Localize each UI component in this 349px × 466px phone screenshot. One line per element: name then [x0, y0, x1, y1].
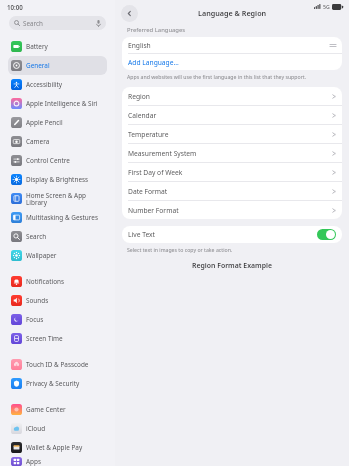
staticText: Number Format: [128, 206, 332, 215]
staticText: Apple Intelligence & Siri: [26, 99, 98, 108]
staticText: Calendar: [128, 111, 332, 120]
button[interactable]: English: [122, 37, 342, 53]
button[interactable]: Sounds: [8, 291, 107, 310]
button[interactable]: Apps: [8, 457, 107, 466]
staticText: Measurement System: [128, 149, 332, 158]
staticText: Region Format Example: [122, 261, 342, 270]
button[interactable]: Multitasking & Gestures: [8, 208, 107, 227]
button[interactable]: Date Format: [122, 182, 342, 200]
button[interactable]: Screen Time: [8, 329, 107, 348]
staticText: Battery: [26, 42, 48, 51]
button[interactable]: Wallet & Apple Pay: [8, 438, 107, 457]
button[interactable]: Accessibility: [8, 75, 107, 94]
button[interactable]: General: [8, 56, 107, 75]
staticText: Privacy & Security: [26, 379, 80, 388]
button[interactable]: Add Language...: [122, 54, 342, 70]
staticText: Screen Time: [26, 334, 63, 343]
staticText: Camera: [26, 137, 50, 146]
button[interactable]: Battery: [8, 37, 107, 56]
button[interactable]: Control Centre: [8, 151, 107, 170]
staticText: Language & Region: [198, 8, 267, 18]
button[interactable]: Search: [9, 16, 106, 30]
button[interactable]: Display & Brightness: [8, 170, 107, 189]
staticText: Search: [26, 232, 47, 241]
button[interactable]: Focus: [8, 310, 107, 329]
staticText: Preferred Languages: [127, 26, 186, 34]
staticText: Control Centre: [26, 156, 70, 165]
staticText: Accessibility: [26, 80, 63, 89]
button[interactable]: Notifications: [8, 272, 107, 291]
button[interactable]: First Day of Week: [122, 163, 342, 181]
button[interactable]: Measurement System: [122, 144, 342, 162]
staticText: Game Center: [26, 405, 66, 414]
staticText: Multitasking & Gestures: [26, 213, 98, 222]
staticText: Wallpaper: [26, 251, 57, 260]
button[interactable]: Live Text: [122, 226, 342, 243]
staticText: First Day of Week: [128, 168, 332, 177]
button[interactable]: Game Center: [8, 400, 107, 419]
staticText: Display & Brightness: [26, 175, 89, 184]
staticText: Temperature: [128, 130, 332, 139]
button[interactable]: Touch ID & Passcode: [8, 355, 107, 374]
staticText: iCloud: [26, 424, 46, 433]
staticText: Search: [23, 19, 43, 28]
staticText: Apps: [26, 457, 42, 466]
staticText: General: [26, 61, 50, 70]
button[interactable]: Back: [121, 5, 138, 22]
button[interactable]: Search: [8, 227, 107, 246]
staticText: Select text in images to copy or take ac…: [127, 246, 233, 253]
button[interactable]: Camera: [8, 132, 107, 151]
staticText: Apps and websites will use the first lan…: [127, 73, 307, 80]
staticText: Focus: [26, 315, 44, 324]
button[interactable]: Wallpaper: [8, 246, 107, 265]
staticText: Notifications: [26, 277, 65, 286]
staticText: 5G: [323, 3, 330, 10]
staticText: Sounds: [26, 296, 49, 305]
staticText: Wallet & Apple Pay: [26, 443, 83, 452]
staticText: Touch ID & Passcode: [26, 360, 89, 369]
staticText: Region: [128, 92, 332, 101]
button[interactable]: Privacy & Security: [8, 374, 107, 393]
staticText: Date Format: [128, 187, 332, 196]
staticText: Add Language...: [128, 58, 179, 67]
button[interactable]: Calendar: [122, 106, 342, 124]
staticText: Apple Pencil: [26, 118, 63, 127]
button[interactable]: Temperature: [122, 125, 342, 143]
button[interactable]: Apple Pencil: [8, 113, 107, 132]
button[interactable]: Region: [122, 87, 342, 105]
button[interactable]: Home Screen & App Library: [8, 189, 107, 208]
staticText: 10:00: [7, 3, 23, 11]
button[interactable]: Apple Intelligence & Siri: [8, 94, 107, 113]
staticText: Home Screen & App Library: [26, 191, 104, 207]
staticText: English: [128, 41, 330, 50]
staticText: Live Text: [128, 230, 317, 239]
button[interactable]: Number Format: [122, 201, 342, 219]
button[interactable]: iCloud: [8, 419, 107, 438]
